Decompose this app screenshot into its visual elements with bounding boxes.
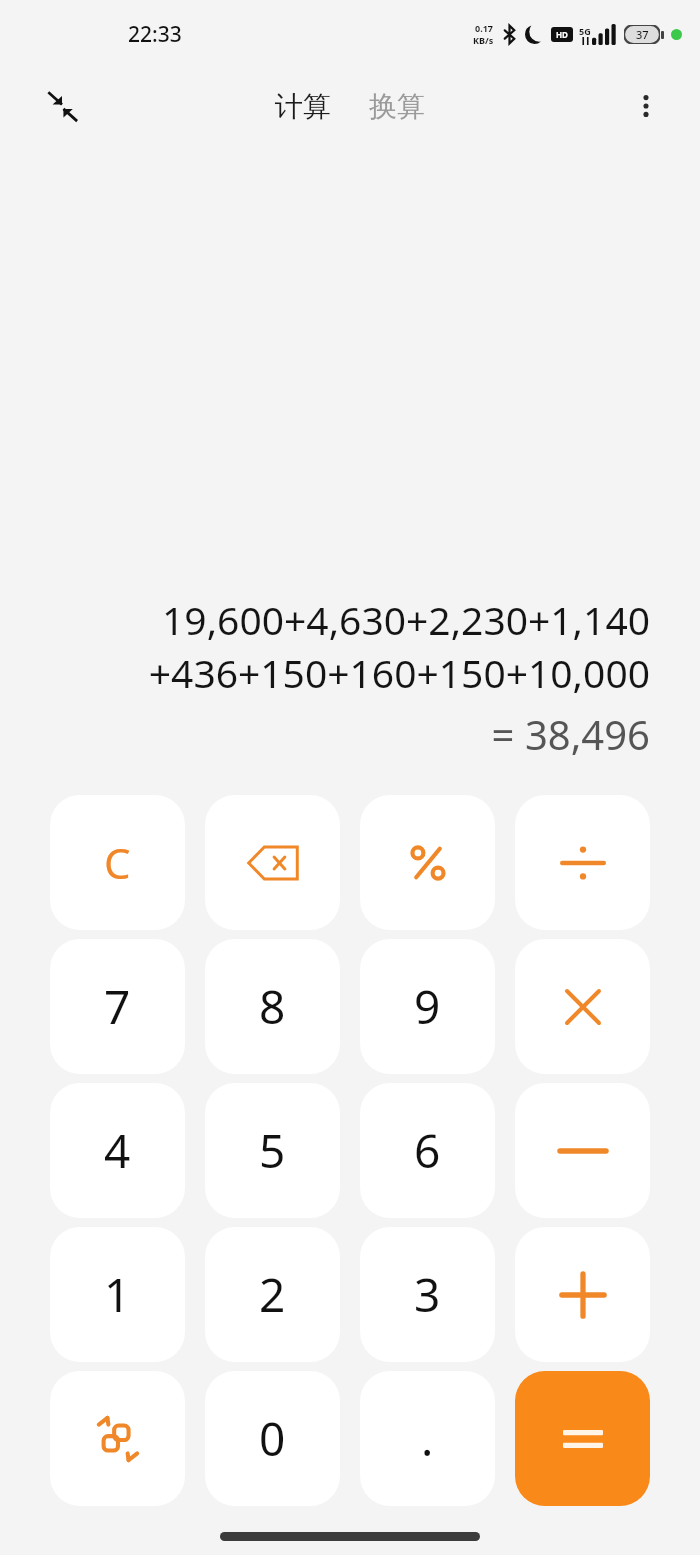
button[interactable]: Plus — [515, 1227, 650, 1362]
staticText: HD — [556, 29, 568, 40]
staticText: 1 — [104, 1263, 131, 1326]
staticText: 0 — [259, 1407, 286, 1470]
staticText: 7 — [104, 975, 131, 1038]
staticText: KB/s — [473, 34, 494, 46]
staticText: 3 — [414, 1263, 441, 1326]
staticText: 2 — [259, 1263, 286, 1326]
button[interactable]: Collapse — [34, 78, 90, 134]
button[interactable]: 6 — [360, 1083, 495, 1218]
button[interactable]: Minus — [515, 1083, 650, 1218]
staticText: C — [104, 834, 131, 891]
staticText: 9 — [414, 975, 441, 1038]
button[interactable]: Percent — [360, 795, 495, 930]
button[interactable]: Divide — [515, 795, 650, 930]
staticText: 计算 — [275, 89, 331, 124]
button[interactable]: 1 — [50, 1227, 185, 1362]
staticText: = 38,496 — [491, 707, 650, 761]
button[interactable]: 8 — [205, 939, 340, 1074]
staticText: 5G — [579, 25, 591, 37]
button[interactable]: Convert — [50, 1371, 185, 1506]
staticText: 4 — [104, 1119, 131, 1182]
button[interactable]: 7 — [50, 939, 185, 1074]
staticText: . — [421, 1407, 434, 1470]
button[interactable]: Multiply — [515, 939, 650, 1074]
button[interactable]: 换算 — [359, 83, 435, 130]
staticText: 换算 — [369, 89, 425, 124]
button[interactable]: 计算 — [265, 83, 341, 130]
staticText: 6 — [414, 1119, 441, 1182]
button[interactable]: 3 — [360, 1227, 495, 1362]
button[interactable]: Backspace — [205, 795, 340, 930]
button[interactable]: 4 — [50, 1083, 185, 1218]
button[interactable]: . — [360, 1371, 495, 1506]
button[interactable]: 5 — [205, 1083, 340, 1218]
button[interactable]: 0 — [205, 1371, 340, 1506]
button[interactable]: Equals — [515, 1371, 650, 1506]
staticText: 22:33 — [128, 20, 182, 49]
button[interactable]: 9 — [360, 939, 495, 1074]
staticText: 37 — [636, 27, 649, 42]
button[interactable]: More options — [618, 78, 674, 134]
button[interactable]: 2 — [205, 1227, 340, 1362]
button[interactable]: C — [50, 795, 185, 930]
staticText: 8 — [259, 975, 286, 1038]
staticText: 0.17 — [475, 22, 493, 34]
staticText: 5 — [259, 1119, 286, 1182]
staticText: 19,600+4,630+2,230+1,140 +436+150+160+15… — [148, 593, 650, 699]
